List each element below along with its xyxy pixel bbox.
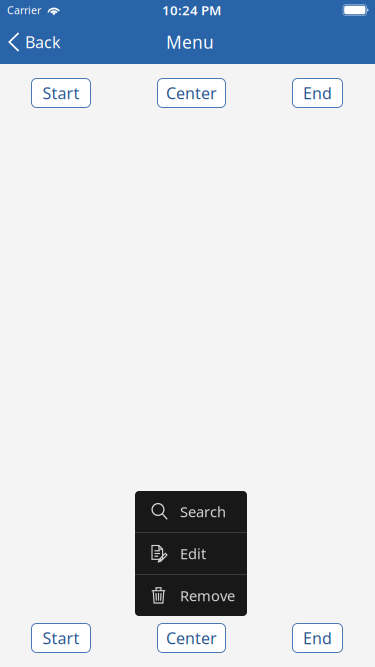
staticText: 10:24 PM xyxy=(162,1,221,19)
staticText: Back xyxy=(25,31,61,53)
staticText: End xyxy=(303,627,332,649)
button[interactable]: Center xyxy=(157,623,226,653)
staticText: Edit xyxy=(180,544,206,563)
button[interactable]: Start xyxy=(31,623,91,653)
staticText: Start xyxy=(42,627,79,649)
staticText: Start xyxy=(42,82,79,104)
button[interactable]: Start xyxy=(31,78,91,108)
button[interactable]: Back xyxy=(0,20,71,64)
staticText: End xyxy=(303,82,332,104)
button[interactable]: Remove xyxy=(135,575,247,616)
staticText: Center xyxy=(166,82,217,104)
staticText: Center xyxy=(166,627,217,649)
staticText: Search xyxy=(180,502,226,521)
button[interactable]: Search xyxy=(135,491,247,532)
button[interactable]: Center xyxy=(157,78,226,108)
staticText: Remove xyxy=(180,586,235,605)
staticText: Carrier xyxy=(7,3,41,17)
button[interactable]: End xyxy=(292,78,343,108)
button[interactable]: Edit xyxy=(135,533,247,574)
button[interactable]: End xyxy=(292,623,343,653)
staticText: Menu xyxy=(166,30,214,53)
